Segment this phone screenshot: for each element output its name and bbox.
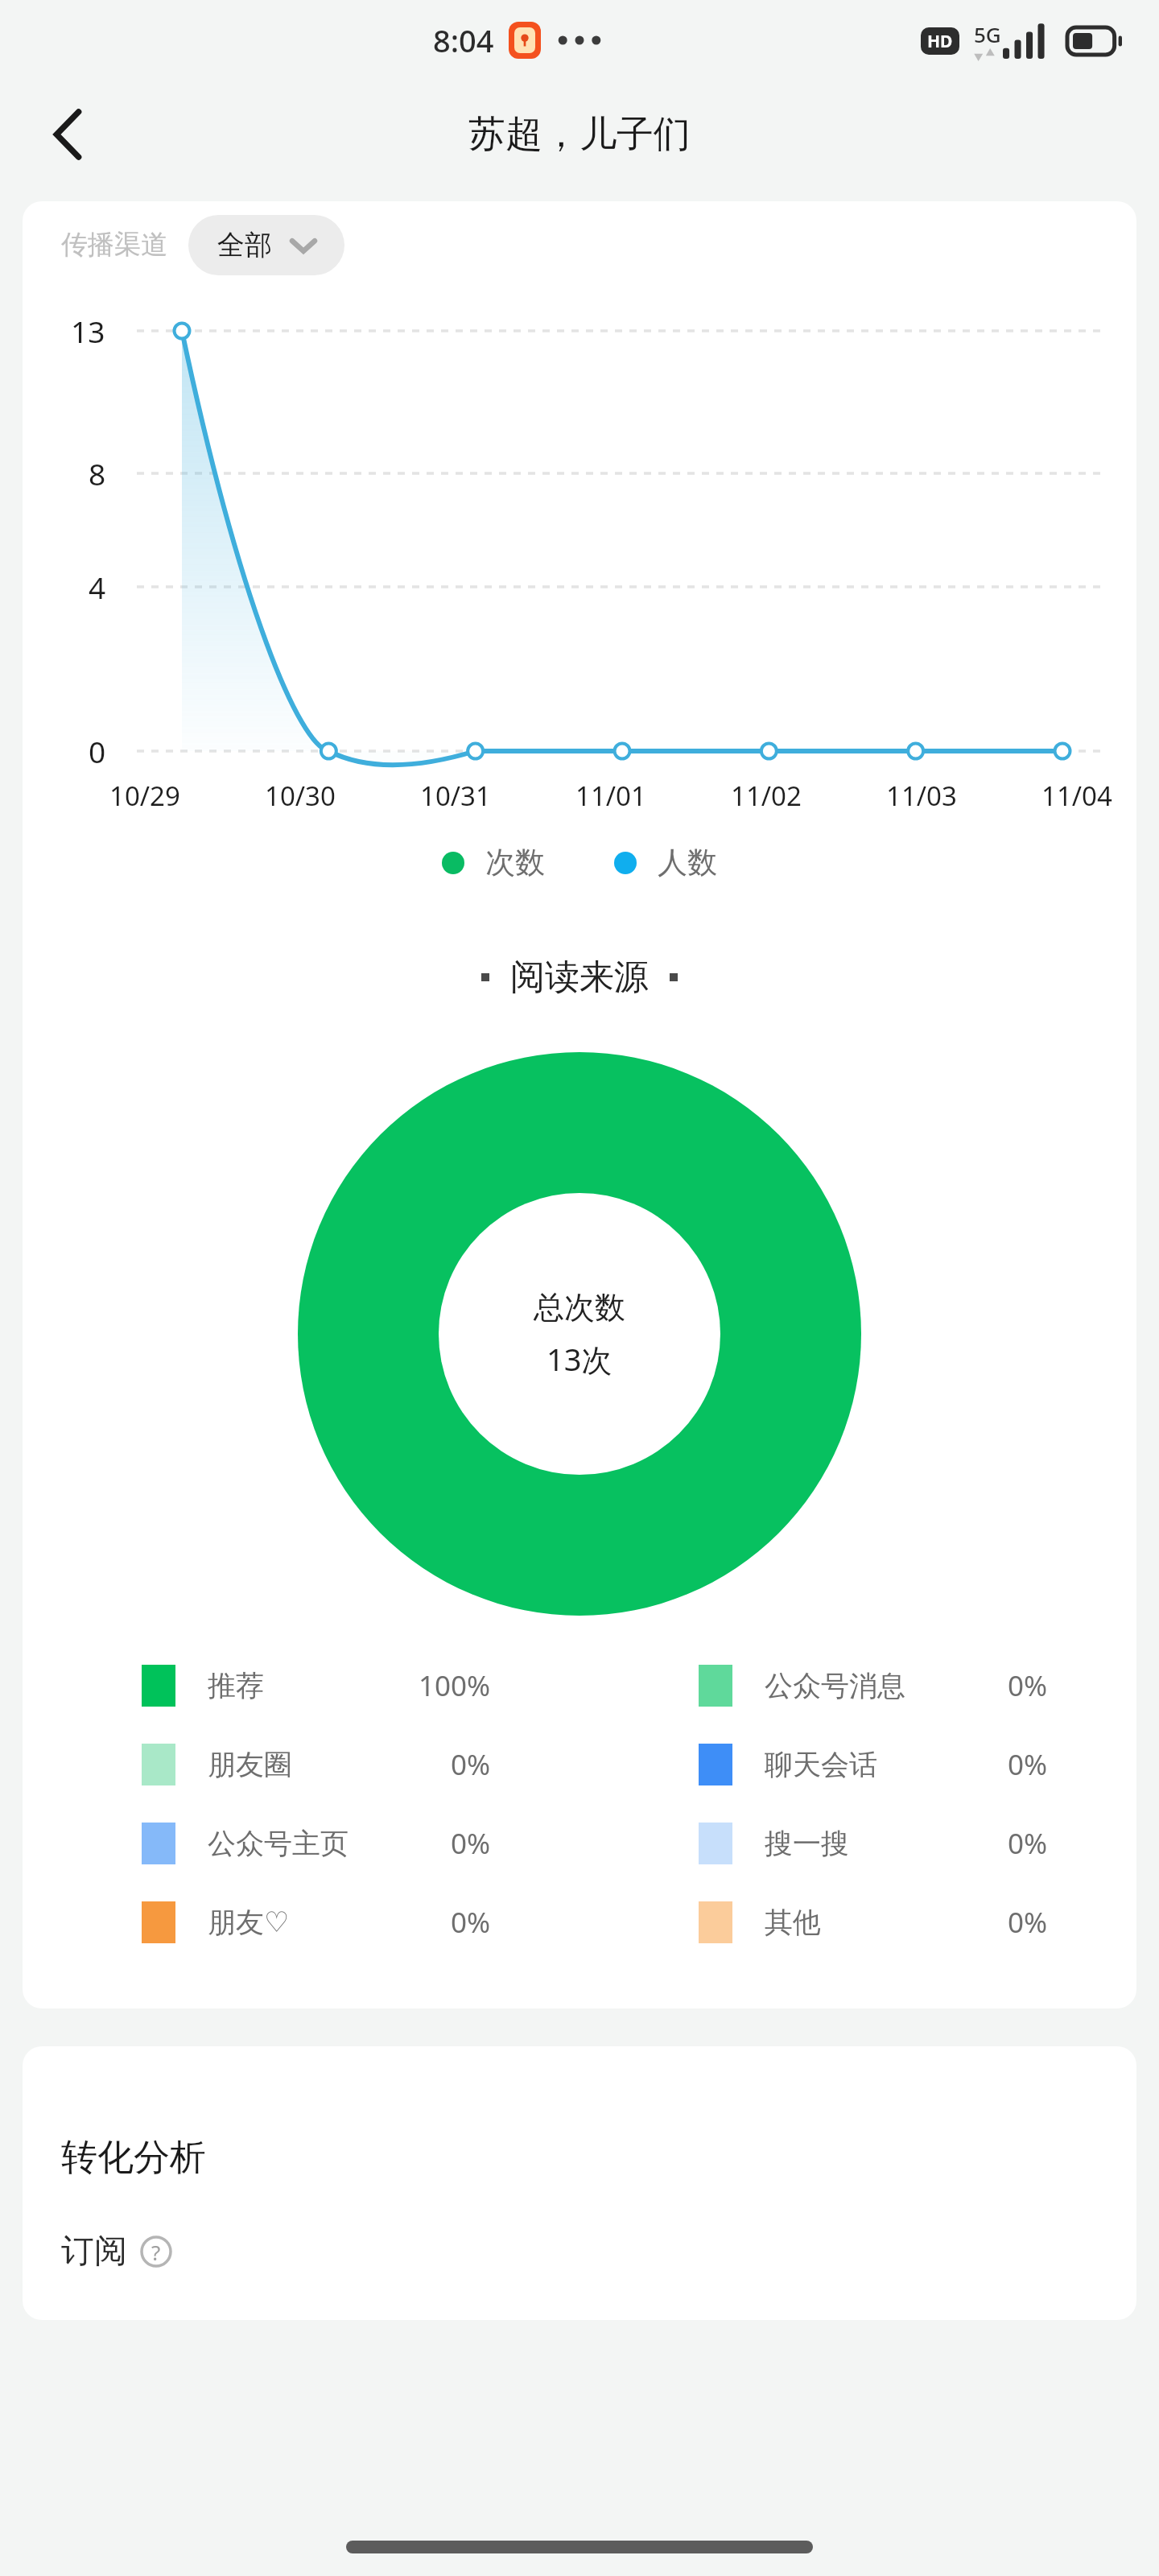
staticText: 总次数 [534, 1288, 625, 1327]
button[interactable]: 全部 [188, 215, 344, 275]
staticText: 11/02 [731, 778, 802, 814]
staticText: ? [151, 2238, 161, 2266]
button[interactable]: 推荐 [23, 1646, 579, 1725]
staticText: 公众号消息 [765, 1668, 905, 1703]
staticText: 0% [1008, 1903, 1048, 1942]
staticText: 0% [1008, 1666, 1048, 1705]
staticText: 11/03 [886, 778, 957, 814]
staticText: 8:04 [433, 19, 494, 61]
staticText: 转化分析 [61, 2135, 206, 2181]
staticText: 推荐 [208, 1668, 264, 1703]
button[interactable]: 次数 [442, 844, 545, 881]
staticText: 10/31 [420, 778, 491, 814]
staticText: 10/30 [265, 778, 336, 814]
staticText: 次数 [485, 844, 545, 881]
staticText: 13次 [547, 1338, 612, 1380]
staticText: 8 [89, 453, 106, 493]
button[interactable]: 公众号主页 [23, 1804, 579, 1883]
staticText: 朋友圈 [208, 1747, 292, 1782]
staticText: HD [927, 30, 953, 53]
staticText: 全部 [217, 228, 272, 262]
staticText: 传播渠道 [61, 228, 167, 262]
button[interactable]: 搜一搜 [579, 1804, 1136, 1883]
button[interactable]: 订阅 [61, 2231, 172, 2273]
staticText: 5G [974, 20, 1001, 48]
staticText: 11/01 [575, 778, 646, 814]
staticText: 0% [451, 1745, 491, 1784]
staticText: 0% [1008, 1824, 1048, 1863]
button[interactable]: 其他 [579, 1883, 1136, 1962]
staticText: 其他 [765, 1905, 821, 1940]
button[interactable]: 人数 [614, 844, 717, 881]
staticText: 11/04 [1041, 778, 1112, 814]
staticText: 13 [71, 311, 105, 351]
staticText: 人数 [658, 844, 717, 881]
staticText: 10/29 [109, 778, 180, 814]
button[interactable]: 聊天会话 [579, 1725, 1136, 1804]
button[interactable]: 公众号消息 [579, 1646, 1136, 1725]
staticText: 聊天会话 [765, 1747, 877, 1782]
staticText: 搜一搜 [765, 1826, 849, 1861]
staticText: 苏超，儿子们 [468, 111, 691, 158]
staticText: 100% [419, 1666, 491, 1705]
staticText: 0 [89, 731, 106, 771]
staticText: 阅读来源 [510, 956, 649, 999]
staticText: 公众号主页 [208, 1826, 349, 1861]
button[interactable]: 朋友圈 [23, 1725, 579, 1804]
staticText: 0% [1008, 1745, 1048, 1784]
staticText: 订阅 [61, 2231, 127, 2273]
button[interactable]: 朋友♡ [23, 1883, 579, 1962]
button[interactable]: Back [29, 96, 106, 173]
staticText: 朋友♡ [208, 1905, 290, 1940]
staticText: 4 [89, 567, 106, 607]
staticText: 0% [451, 1824, 491, 1863]
staticText: 0% [451, 1903, 491, 1942]
